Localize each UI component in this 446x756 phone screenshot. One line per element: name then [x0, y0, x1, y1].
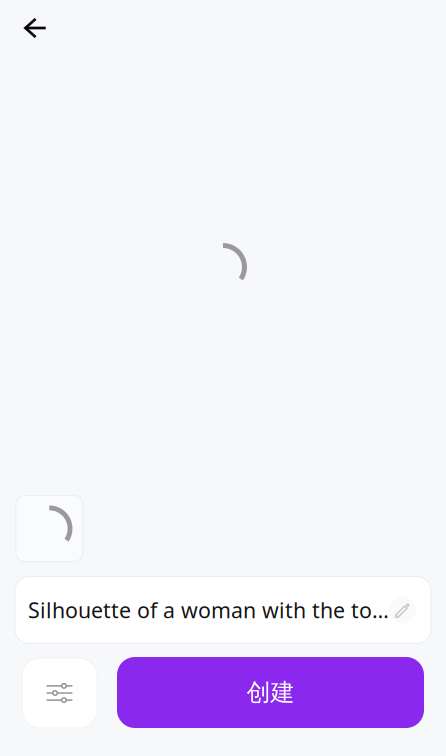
staticText: Silhouette of a woman with the to…: [28, 596, 389, 624]
button[interactable]: 创建: [117, 657, 424, 728]
button[interactable]: Silhouette of a woman with the to…: [15, 576, 431, 643]
button[interactable]: Settings: [22, 658, 97, 728]
staticText: 创建: [246, 678, 294, 707]
button[interactable]: Back: [10, 5, 58, 51]
